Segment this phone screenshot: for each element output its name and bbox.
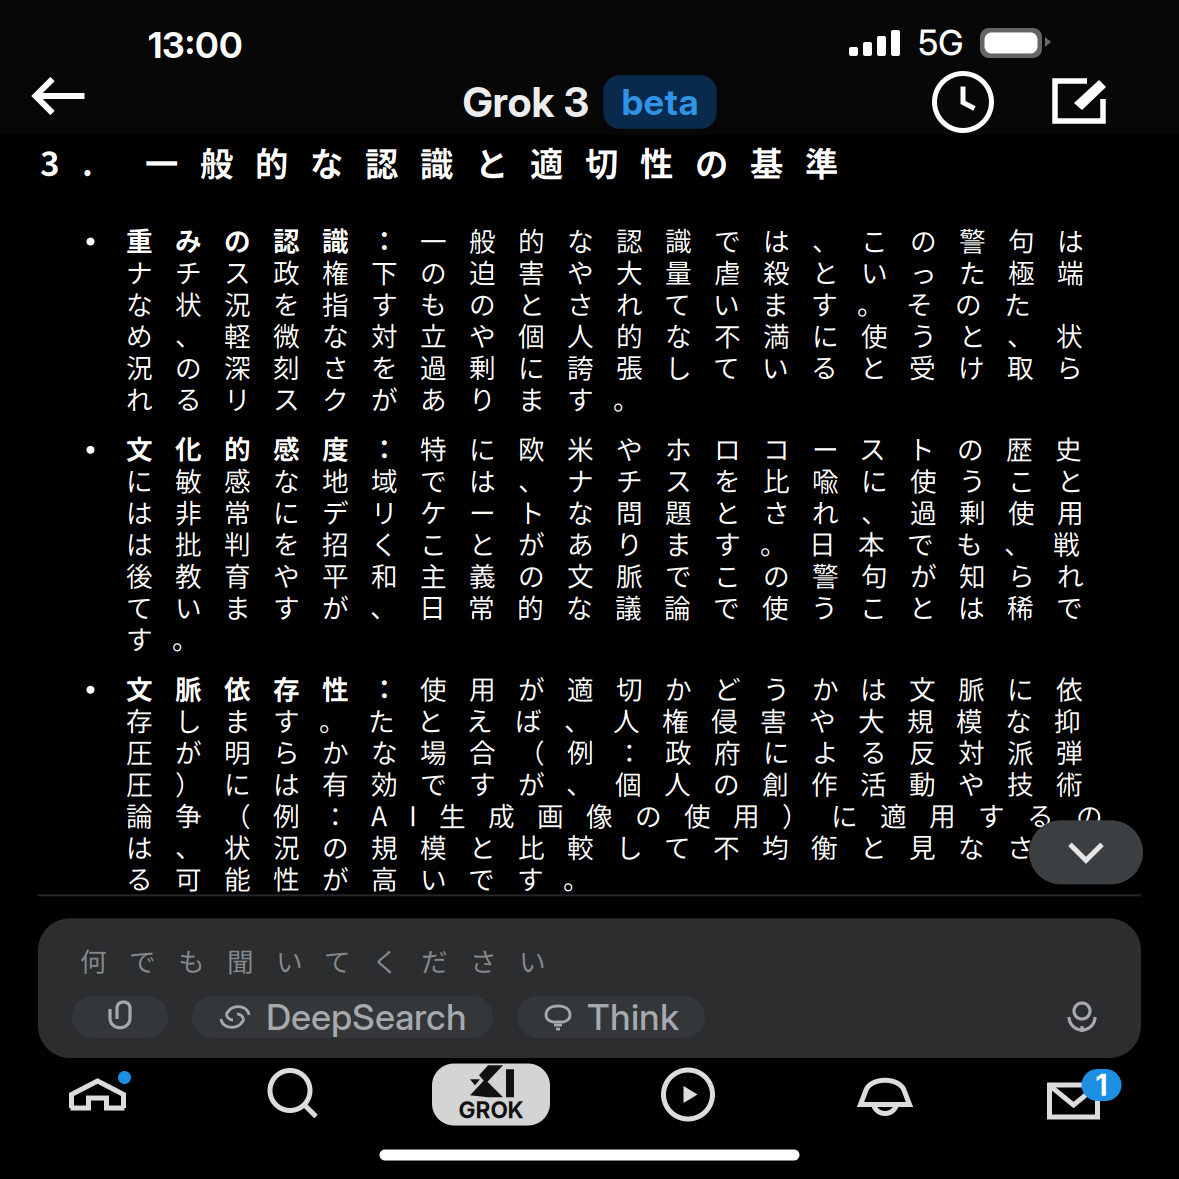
button[interactable]: Dictate (1051, 996, 1113, 1038)
staticText: DeepSearch (266, 995, 467, 1039)
staticText: 重みの認識：一般的な認識では、この警句はナチス政権下の迫害や大量虐殺といった極端… (126, 224, 1084, 414)
staticText: 13:00 (148, 23, 243, 67)
staticText: Grok 3 (462, 77, 589, 127)
staticText: 1 (1095, 1067, 1107, 1103)
staticText: 3. 一般的な認識と適切性の基準 (40, 142, 838, 182)
button[interactable]: DeepSearch (192, 996, 493, 1038)
staticText: 何でも聞いてください (80, 944, 546, 976)
staticText: Think (587, 995, 679, 1039)
button[interactable]: Scroll to bottom (1029, 820, 1143, 884)
button[interactable]: Home (0, 1058, 195, 1131)
staticText: 5G (918, 22, 964, 64)
staticText: 文脈依存性：使用が適切かどうかは文脈に依存します。たとえば、人権侵害や大規模な抑… (126, 672, 1103, 894)
button[interactable]: New chat (1021, 70, 1137, 134)
button[interactable]: Video (589, 1058, 786, 1131)
button[interactable]: Notifications (786, 1058, 983, 1131)
button[interactable]: Chat history (905, 70, 1021, 134)
button[interactable]: Back (14, 70, 106, 134)
button[interactable]: Attach file (72, 996, 168, 1038)
button[interactable]: Search (195, 1058, 392, 1131)
staticText: beta (621, 80, 698, 124)
button[interactable]: Think (517, 996, 705, 1038)
staticText: 文化的感度：特に欧米やホロコーストの歴史に敏感な地域では、ナチスを比喩に使うこと… (126, 432, 1084, 654)
button[interactable]: Messages (983, 1058, 1179, 1131)
button[interactable]: Grok (392, 1058, 589, 1131)
staticText: GROK (458, 1096, 523, 1124)
